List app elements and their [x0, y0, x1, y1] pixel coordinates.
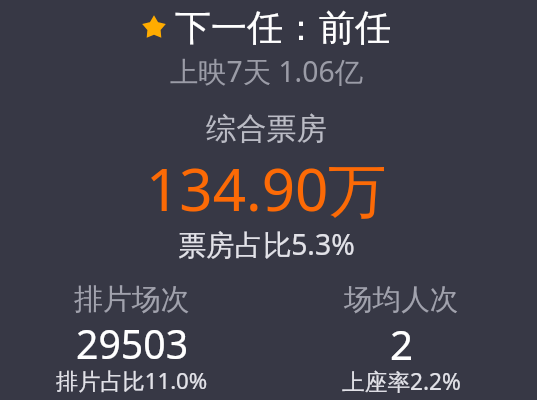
- staticText: 29503: [76, 317, 189, 370]
- staticText: 134.90万: [146, 149, 387, 229]
- staticText: 上映7天 1.06亿: [170, 52, 363, 91]
- button[interactable]: Favourite: [138, 2, 391, 48]
- button[interactable]: 排片场次: [0, 276, 268, 400]
- staticText: 排片场次: [74, 281, 190, 317]
- staticText: 上座率2.2%: [342, 366, 461, 397]
- button[interactable]: 场均人次: [268, 276, 537, 400]
- staticText: 排片占比11.0%: [56, 365, 208, 395]
- other: Favourite: [143, 16, 165, 38]
- staticText: 下一任：前任: [175, 5, 391, 50]
- staticText: 票房占比5.3%: [178, 225, 355, 264]
- staticText: 场均人次: [344, 281, 459, 317]
- staticText: 2: [390, 317, 414, 372]
- staticText: 综合票房: [206, 110, 327, 148]
